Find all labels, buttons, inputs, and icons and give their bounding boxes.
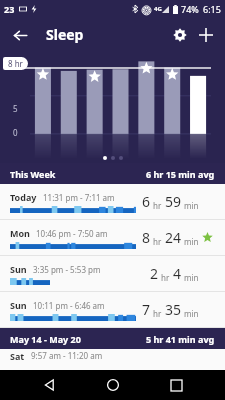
staticText: hr <box>153 200 162 211</box>
staticText: 23 <box>4 3 15 15</box>
staticText: 9:57 am - 11:20 am <box>31 350 103 361</box>
button[interactable]: Add <box>193 22 219 48</box>
staticText: 2 <box>150 264 159 283</box>
staticText: min <box>184 308 199 319</box>
staticText: hr <box>153 236 162 247</box>
button[interactable]: Back <box>34 370 64 400</box>
button[interactable]: Sat <box>10 349 215 362</box>
button[interactable]: Back <box>8 23 32 47</box>
staticText: 3:35 pm - 5:53 pm <box>33 264 101 275</box>
staticText: 6 <box>142 192 151 211</box>
staticText: hr <box>153 308 162 319</box>
staticText: 5 hr 41 min avg <box>146 333 215 345</box>
staticText: 10:11 pm - 6:46 am <box>33 300 105 311</box>
staticText: 7 <box>142 300 151 319</box>
staticText: min <box>184 272 199 283</box>
button[interactable]: Recents <box>161 370 191 400</box>
staticText: hr <box>161 272 170 283</box>
staticText: 4 <box>173 264 182 283</box>
button[interactable]: Sun <box>0 256 225 292</box>
staticText: 4G <box>154 5 162 13</box>
button[interactable]: Mon <box>0 220 225 256</box>
staticText: 74% <box>181 3 199 15</box>
button[interactable]: Home <box>98 370 128 400</box>
staticText: Sleep <box>46 25 84 44</box>
button[interactable]: Today <box>0 184 225 220</box>
staticText: May 14 - May 20 <box>10 333 81 345</box>
staticText: 8 hr <box>8 58 23 69</box>
staticText: 8 <box>142 228 151 247</box>
staticText: Sun <box>10 263 27 275</box>
staticText: 0 <box>13 127 18 138</box>
staticText: min <box>184 200 199 211</box>
staticText: 35 <box>165 300 182 319</box>
staticText: min <box>184 236 199 247</box>
staticText: Mon <box>10 227 30 239</box>
staticText: This Week <box>10 168 56 180</box>
staticText: 59 <box>165 192 182 211</box>
button[interactable]: Sun <box>0 292 225 328</box>
staticText: Today <box>10 191 37 203</box>
staticText: 6:15 <box>203 3 221 15</box>
button[interactable]: Settings <box>167 22 193 48</box>
staticText: 6 hr 15 min avg <box>146 168 215 180</box>
staticText: Sat <box>10 350 25 362</box>
staticText: 10:46 pm - 7:50 am <box>36 228 108 239</box>
staticText: 24 <box>165 228 182 247</box>
staticText: 5 <box>13 103 18 114</box>
staticText: Sun <box>10 299 27 311</box>
staticText: 11:31 pm - 7:11 am <box>43 192 115 203</box>
